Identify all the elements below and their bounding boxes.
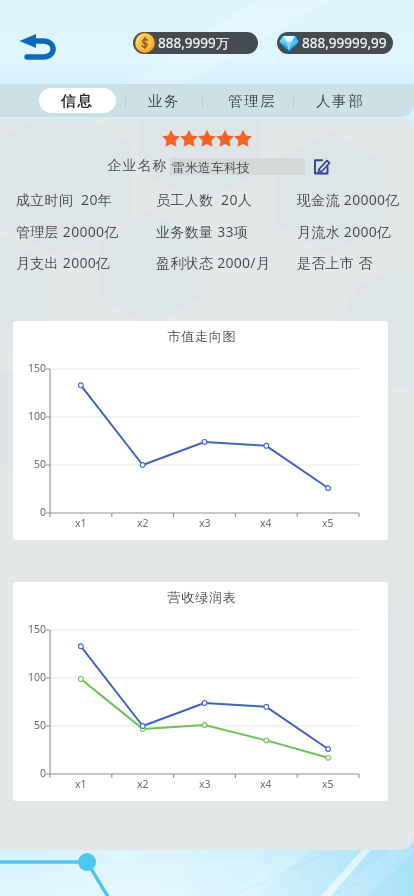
staticText: 管理层 20000亿 <box>16 222 119 240</box>
button[interactable]: 888,99999,99 <box>277 32 393 54</box>
staticText: x4 <box>260 516 272 530</box>
staticText: 月支出 2000亿 <box>16 253 111 271</box>
staticText: 50 <box>34 718 47 732</box>
button[interactable]: 月流水 2000亿 <box>297 220 392 242</box>
staticText: x5 <box>322 516 334 530</box>
staticText: 150 <box>28 361 47 375</box>
button[interactable]: 业务数量 33项 <box>156 220 249 242</box>
staticText: 888,9999万 <box>158 34 230 52</box>
staticText: 业务 <box>148 92 181 110</box>
staticText: 雷米造车科技 <box>172 159 250 175</box>
button[interactable]: 信息 <box>39 88 116 113</box>
staticText: 是否上市 否 <box>297 253 373 271</box>
staticText: 100 <box>28 670 47 684</box>
staticText: x4 <box>260 777 272 791</box>
staticText: 员工人数 20人 <box>156 190 252 208</box>
staticText: 营收绿润表 <box>167 589 236 605</box>
staticText: x1 <box>75 777 87 791</box>
staticText: 现金流 20000亿 <box>297 190 400 208</box>
staticText: x2 <box>137 516 149 530</box>
staticText: 人事部 <box>316 92 365 110</box>
staticText: 企业名称 <box>107 157 167 175</box>
button[interactable]: 月支出 2000亿 <box>16 251 111 273</box>
staticText: x3 <box>199 777 211 791</box>
staticText: 月流水 2000亿 <box>297 222 392 240</box>
button[interactable]: 888,9999万 <box>133 32 258 54</box>
staticText: 成立时间 20年 <box>16 190 112 208</box>
staticText: 盈利状态 2000/月 <box>156 253 271 271</box>
staticText: x1 <box>75 516 87 530</box>
button[interactable]: 管理层 20000亿 <box>16 220 119 242</box>
staticText: x5 <box>322 777 334 791</box>
staticText: 管理层 <box>228 92 277 110</box>
button[interactable]: Edit name <box>312 157 332 175</box>
staticText: 888,99999,99 <box>302 34 387 52</box>
button[interactable]: 管理层 <box>219 84 285 117</box>
staticText: 150 <box>28 622 47 636</box>
button[interactable]: 员工人数 20人 <box>156 188 252 210</box>
staticText: 0 <box>40 505 47 519</box>
staticText: 信息 <box>61 92 94 110</box>
staticText: 业务数量 33项 <box>156 222 249 240</box>
staticText: 0 <box>40 766 47 780</box>
button[interactable]: 成立时间 20年 <box>16 188 112 210</box>
button[interactable]: Back <box>15 19 73 63</box>
button[interactable]: 市值走向图 <box>13 321 388 540</box>
button[interactable]: 人事部 <box>307 84 373 117</box>
staticText: 50 <box>34 457 47 471</box>
button[interactable]: 营收绿润表 <box>13 582 388 801</box>
staticText: 市值走向图 <box>167 328 236 344</box>
staticText: x2 <box>137 777 149 791</box>
button[interactable]: 现金流 20000亿 <box>297 188 400 210</box>
button[interactable]: 业务 <box>139 84 189 117</box>
button[interactable]: 是否上市 否 <box>297 251 373 273</box>
staticText: 100 <box>28 409 47 423</box>
button[interactable]: 盈利状态 2000/月 <box>156 251 271 273</box>
staticText: x3 <box>199 516 211 530</box>
